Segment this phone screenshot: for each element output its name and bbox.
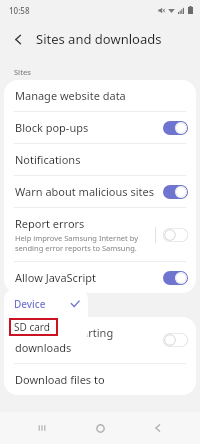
staticText: Sites and downloads <box>36 30 162 48</box>
staticText: Allow JavaScript <box>15 270 97 285</box>
button[interactable]: Notifications <box>4 144 196 175</box>
button[interactable]: Off <box>163 228 188 242</box>
staticText: SD card <box>14 320 50 334</box>
staticText: 10:58 <box>9 5 30 16</box>
button[interactable]: Off <box>163 333 188 347</box>
button[interactable]: Back <box>4 25 32 53</box>
button[interactable]: Back <box>142 412 174 444</box>
button[interactable]: Manage website data <box>4 80 196 111</box>
staticText: Block pop-ups <box>15 120 89 135</box>
button[interactable]: Device <box>4 293 88 315</box>
staticText: Help improve Samsung Internet by sending… <box>15 233 155 253</box>
button[interactable]: Warn about malicious sites <box>4 176 196 207</box>
button[interactable]: On <box>163 121 188 135</box>
button[interactable]: Download files to <box>4 364 196 395</box>
staticText: Downloads <box>14 304 54 314</box>
staticText: Device <box>14 297 46 311</box>
staticText: Sites <box>14 67 31 77</box>
button[interactable]: SD card <box>9 318 58 336</box>
button[interactable]: Block pop-ups <box>4 112 196 143</box>
button[interactable]: Recents <box>26 412 58 444</box>
button[interactable]: Allow JavaScript <box>4 262 196 293</box>
staticText: Manage website data <box>15 88 126 103</box>
staticText: Notifications <box>15 152 81 167</box>
button[interactable]: On <box>163 271 188 285</box>
button[interactable]: Ask before starting downloads <box>4 317 196 363</box>
button[interactable]: On <box>163 185 188 199</box>
button[interactable]: Home <box>84 412 116 444</box>
staticText: Warn about malicious sites <box>15 184 154 199</box>
staticText: Report errors <box>15 216 85 231</box>
button[interactable]: Report errors <box>4 208 196 261</box>
staticText: Download files to <box>15 372 105 387</box>
staticText: Ask before starting downloads <box>15 325 163 355</box>
